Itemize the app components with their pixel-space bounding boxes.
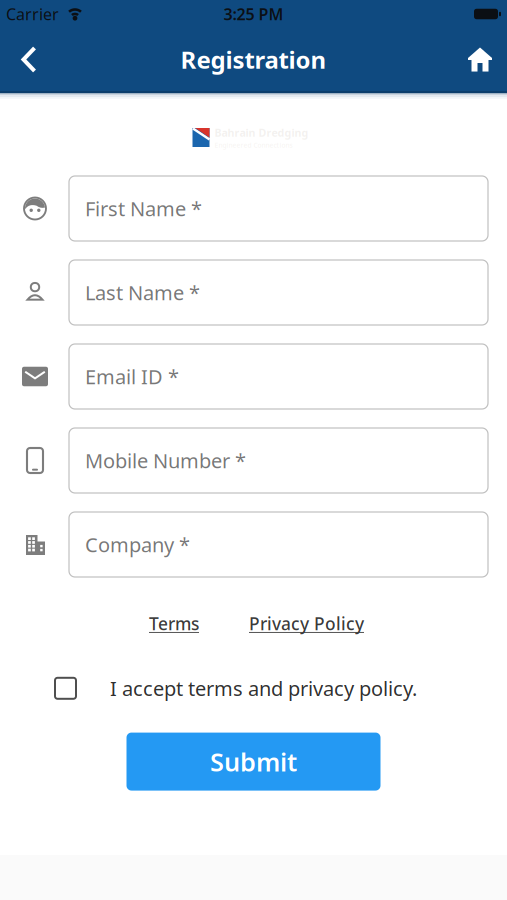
staticText: Company * [85, 531, 190, 558]
staticText: First Name * [85, 195, 202, 222]
button[interactable]: I accept terms and privacy policy [55, 678, 76, 699]
button[interactable]: Mobile Number * [69, 428, 488, 493]
staticText: Bahrain Dredging [214, 125, 308, 140]
button[interactable]: Submit [126, 733, 380, 791]
button[interactable]: Company * [69, 512, 488, 577]
button[interactable]: First Name * [69, 176, 488, 241]
staticText: 3:25 PM [223, 3, 283, 25]
staticText: Terms [149, 612, 199, 635]
staticText: Mobile Number * [85, 447, 246, 474]
button[interactable]: Back [14, 39, 44, 79]
staticText: Email ID * [85, 363, 179, 390]
staticText: Registration [180, 44, 326, 75]
button[interactable]: Terms [149, 612, 199, 635]
staticText: Submit [210, 745, 297, 778]
staticText: I accept terms and privacy policy. [110, 675, 417, 702]
staticText: Last Name * [85, 279, 200, 306]
staticText: Privacy Policy [249, 612, 364, 635]
button[interactable]: Email ID * [69, 344, 488, 409]
button[interactable]: Home [465, 39, 495, 79]
button[interactable]: Privacy Policy [249, 612, 364, 635]
staticText: Carrier [6, 3, 59, 25]
button[interactable]: Last Name * [69, 260, 488, 325]
staticText: Engineered Connections [214, 141, 292, 150]
